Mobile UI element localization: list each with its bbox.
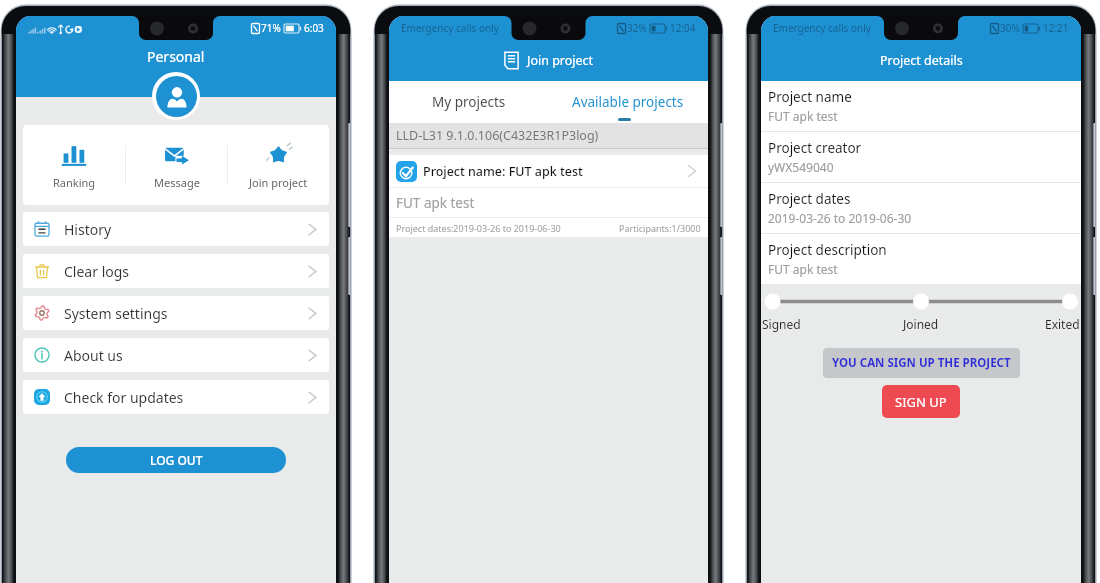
staticText: LLD-L31 9.1.0.106(C432E3R1P3log) <box>396 127 599 144</box>
button[interactable]: Ranking <box>23 142 125 205</box>
staticText: Project name: FUT apk test <box>423 163 583 180</box>
staticText: Join project <box>527 52 594 69</box>
button[interactable]: Profile avatar <box>152 72 200 120</box>
staticText: yWX549040 <box>768 159 834 175</box>
staticText: 6:03 <box>304 21 324 35</box>
button[interactable]: LOG OUT <box>66 447 286 473</box>
staticText: 30% <box>1000 21 1020 35</box>
staticText: Project name <box>768 88 852 106</box>
staticText: Joined <box>903 316 939 332</box>
staticText: Message <box>154 175 200 190</box>
staticText: Project details <box>880 52 963 69</box>
staticText: LOG OUT <box>150 452 203 468</box>
staticText: 2019-03-26 to 2019-06-30 <box>768 210 912 226</box>
staticText: 32% <box>627 21 647 35</box>
button[interactable]: About us <box>23 338 329 372</box>
staticText: Check for updates <box>64 388 184 407</box>
staticText: Signed <box>762 316 801 332</box>
staticText: Emergency calls only <box>401 21 499 35</box>
staticText: Ranking <box>53 175 96 190</box>
staticText: Available projects <box>572 93 684 111</box>
staticText: 12:21 <box>1043 21 1069 35</box>
button[interactable]: Project name: FUT apk test <box>389 155 708 237</box>
button[interactable]: My projects <box>389 81 548 123</box>
button[interactable]: Available projects <box>548 81 708 123</box>
staticText: Project dates:2019-03-26 to 2019-06-30 <box>396 222 561 234</box>
staticText: YOU CAN SIGN UP THE PROJECT <box>832 355 1011 371</box>
staticText: 12:04 <box>670 21 696 35</box>
staticText: 71% <box>261 21 281 35</box>
button[interactable]: System settings <box>23 296 329 330</box>
staticText: Clear logs <box>64 262 130 281</box>
staticText: Join project <box>249 175 308 190</box>
button[interactable]: Check for updates <box>23 380 329 414</box>
button[interactable]: History <box>23 212 329 246</box>
staticText: FUT apk test <box>768 108 838 124</box>
staticText: My projects <box>432 93 506 111</box>
staticText: Personal <box>147 47 205 66</box>
staticText: Exited <box>1045 316 1080 332</box>
button[interactable]: Message <box>126 142 227 205</box>
staticText: Project dates <box>768 190 851 208</box>
button[interactable]: Clear logs <box>23 254 329 288</box>
staticText: History <box>64 220 112 239</box>
staticText: System settings <box>64 304 168 323</box>
staticText: FUT apk test <box>768 261 838 277</box>
button[interactable]: Join project <box>228 142 329 205</box>
button[interactable]: SIGN UP <box>882 385 960 418</box>
staticText: SIGN UP <box>895 393 947 411</box>
staticText: Emergency calls only <box>773 21 871 35</box>
staticText: Participants:1/3000 <box>619 222 701 234</box>
staticText: Project creator <box>768 139 862 157</box>
staticText: FUT apk test <box>396 194 475 212</box>
staticText: Project description <box>768 241 887 259</box>
staticText: About us <box>64 346 123 365</box>
